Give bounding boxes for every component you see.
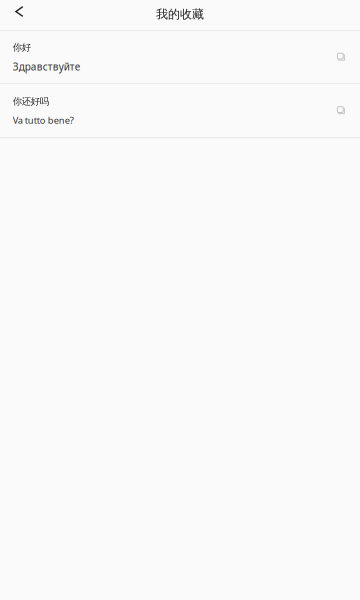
staticText: 你还好吗 xyxy=(13,96,49,107)
button[interactable]: 你还好吗 xyxy=(0,84,360,137)
button[interactable]: Back xyxy=(0,6,36,24)
staticText: Здравствуйте xyxy=(13,60,81,73)
button[interactable]: 你好 xyxy=(0,31,360,83)
staticText: Va tutto bene? xyxy=(13,114,74,126)
staticText: 你好 xyxy=(13,42,31,53)
staticText: 我的收藏 xyxy=(156,7,204,22)
